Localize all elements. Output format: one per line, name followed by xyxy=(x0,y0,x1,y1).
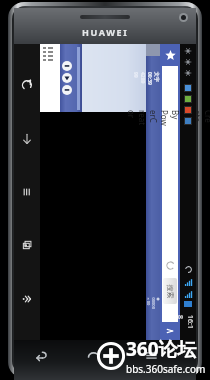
button[interactable]: Refresh xyxy=(15,73,39,97)
button[interactable]: Back xyxy=(30,344,52,366)
staticText: Created By PowerCreator xyxy=(126,110,210,126)
button[interactable]: Bookmark xyxy=(160,44,180,66)
staticText: 搜索 xyxy=(165,284,174,298)
staticText: 16:18 xyxy=(175,315,195,331)
button[interactable]: Play xyxy=(62,61,72,71)
button[interactable]: Menu xyxy=(15,180,39,204)
button[interactable]: Created By PowerCreator xyxy=(162,66,178,322)
button[interactable]: Windows xyxy=(15,233,39,257)
staticText: HUAWEI xyxy=(82,26,129,38)
staticText: 360论坛 xyxy=(126,336,197,362)
staticText: 网页·相关文字 00:39428999 xyxy=(132,72,174,86)
button[interactable]: Home xyxy=(82,344,104,366)
button[interactable]: Menu xyxy=(140,344,162,366)
button[interactable]: Forward xyxy=(15,287,39,311)
button[interactable]: Stop xyxy=(62,85,72,95)
staticText: ◆ 00000 × 00 xyxy=(145,297,160,311)
staticText: bbs.360safe.com xyxy=(126,362,206,376)
button[interactable]: Download xyxy=(15,127,39,151)
button[interactable]: Pause xyxy=(62,73,72,83)
button[interactable]: 搜索 xyxy=(163,278,177,304)
button[interactable]: Back xyxy=(160,322,180,340)
